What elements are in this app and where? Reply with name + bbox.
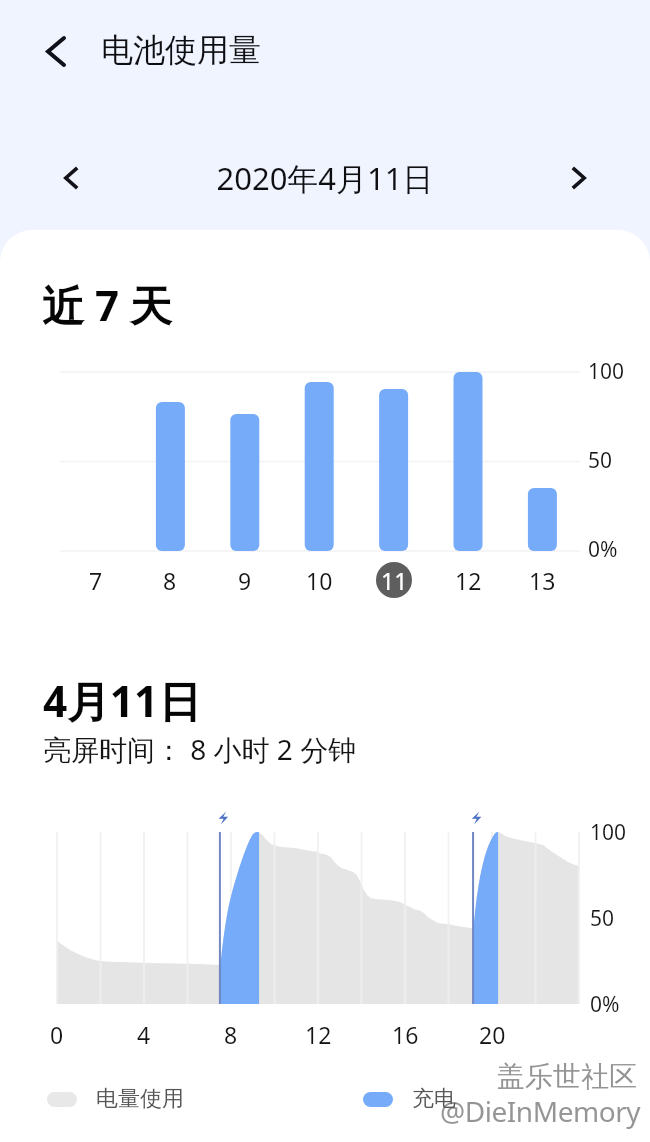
- button[interactable]: Next day: [543, 143, 613, 213]
- button[interactable]: 电量使用: [47, 1085, 184, 1113]
- staticText: 4: [137, 1019, 151, 1050]
- button[interactable]: Back: [20, 16, 92, 86]
- staticText: @DieInMemory: [440, 1092, 641, 1130]
- staticText: 7: [89, 565, 103, 596]
- button[interactable]: 充电: [363, 1085, 456, 1113]
- button[interactable]: 8: [146, 556, 194, 604]
- button[interactable]: 12: [444, 556, 492, 604]
- button[interactable]: 10: [295, 556, 343, 604]
- staticText: 13: [529, 565, 556, 596]
- staticText: 近 7 天: [42, 276, 172, 333]
- staticText: 12: [305, 1019, 332, 1050]
- staticText: 100: [588, 357, 625, 386]
- staticText: 100: [590, 818, 627, 847]
- button[interactable]: 13: [518, 556, 566, 604]
- staticText: 11: [381, 565, 408, 596]
- staticText: 12: [455, 565, 482, 596]
- staticText: 0%: [588, 535, 618, 564]
- staticText: 电量使用: [96, 1085, 184, 1113]
- staticText: 9: [238, 565, 252, 596]
- staticText: 10: [306, 565, 333, 596]
- staticText: 8: [224, 1019, 238, 1050]
- staticText: 20: [479, 1019, 506, 1050]
- staticText: 充电: [412, 1085, 456, 1113]
- staticText: 盖乐世社区: [497, 1059, 637, 1094]
- staticText: 0%: [590, 990, 620, 1019]
- staticText: 16: [392, 1019, 419, 1050]
- staticText: 2020年4月11日: [216, 157, 434, 199]
- button[interactable]: 11: [370, 556, 418, 604]
- button[interactable]: 7: [72, 556, 120, 604]
- staticText: 0: [50, 1019, 64, 1050]
- button[interactable]: Previous day: [36, 143, 106, 213]
- staticText: 亮屏时间： 8 小时 2 分钟: [43, 730, 357, 768]
- staticText: 电池使用量: [101, 30, 261, 70]
- staticText: 50: [588, 446, 613, 475]
- staticText: 8: [163, 565, 177, 596]
- staticText: 50: [590, 904, 615, 933]
- button[interactable]: 9: [221, 556, 269, 604]
- staticText: 4月11日: [43, 672, 201, 730]
